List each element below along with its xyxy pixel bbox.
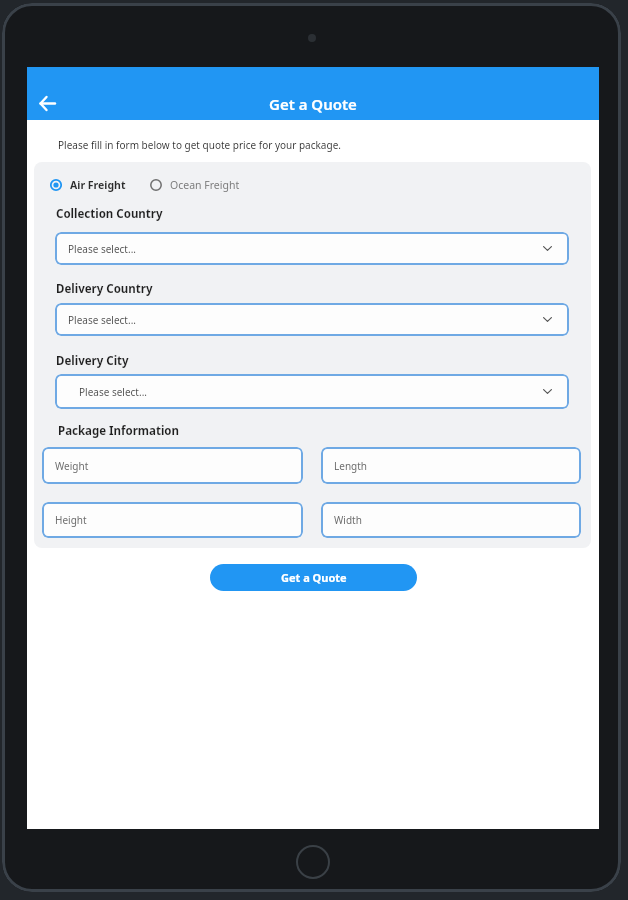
button[interactable]: Height [42, 502, 303, 538]
staticText: Get a Quote [281, 570, 347, 585]
staticText: Height [55, 513, 87, 527]
staticText: Please select... [79, 385, 148, 399]
staticText: Please select... [68, 313, 137, 327]
button[interactable]: Please select... [55, 232, 569, 265]
button[interactable] [33, 89, 61, 117]
staticText: Please fill in form below to get quote p… [58, 138, 341, 152]
staticText: Ocean Freight [170, 178, 240, 192]
staticText: Width [334, 513, 362, 527]
staticText: Weight [55, 459, 89, 473]
staticText: Delivery Country [56, 281, 153, 297]
button[interactable]: Width [321, 502, 581, 538]
staticText: Collection Country [56, 206, 163, 222]
staticText: Package Information [58, 423, 180, 439]
staticText: Length [334, 459, 367, 473]
staticText: Delivery City [56, 353, 129, 369]
button[interactable]: Please select... [55, 374, 569, 409]
button[interactable]: Ocean Freight [150, 178, 240, 192]
button[interactable]: Length [321, 447, 581, 484]
button[interactable]: Please select... [55, 303, 569, 336]
staticText: Please select... [68, 242, 137, 256]
button[interactable]: Get a Quote [210, 564, 417, 591]
button[interactable]: Air Freight [50, 178, 126, 192]
button[interactable]: Weight [42, 447, 303, 484]
staticText: Get a Quote [269, 94, 357, 114]
staticText: Air Freight [70, 178, 126, 192]
